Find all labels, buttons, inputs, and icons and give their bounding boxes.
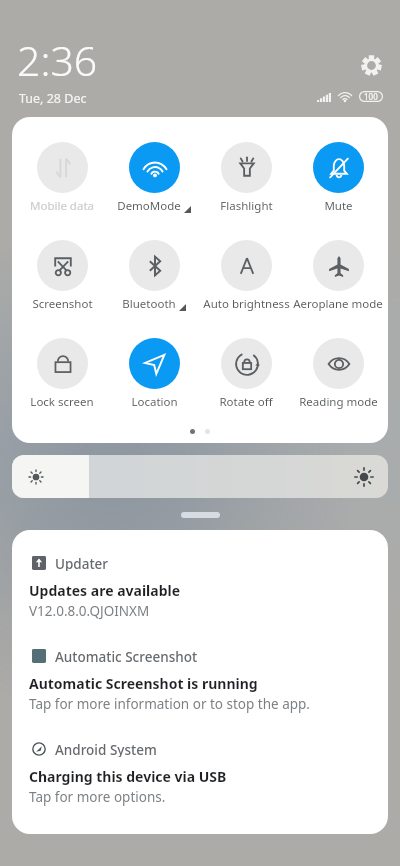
staticText: 100	[364, 91, 378, 102]
staticText: Aeroplane mode	[293, 296, 383, 312]
staticText: Lock screen	[30, 394, 94, 410]
staticText: Mobile data	[30, 198, 94, 214]
staticText: Automatic Screenshot	[55, 648, 198, 664]
staticText: 2:36	[17, 32, 98, 88]
staticText: Screenshot	[32, 296, 93, 312]
staticText: Flashlight	[220, 198, 273, 214]
staticText: DemoMode	[117, 198, 181, 214]
button[interactable]: Rotate off	[200, 338, 292, 410]
button[interactable]: Mobile data	[16, 142, 108, 214]
staticText: Rotate off	[219, 394, 273, 410]
staticText: Auto brightness	[203, 296, 290, 312]
staticText: Location	[131, 394, 178, 410]
staticText: V12.0.8.0.QJOINXM	[29, 602, 150, 620]
staticText: Updates are available	[29, 581, 181, 600]
button[interactable]: Screenshot	[16, 240, 108, 312]
button[interactable]: Automatic Screenshot	[29, 648, 372, 713]
button[interactable]: Aeroplane mode	[292, 240, 384, 312]
staticText: Charging this device via USB	[29, 767, 227, 786]
button[interactable]: Auto brightness	[200, 240, 292, 312]
button[interactable]: Android System	[29, 741, 372, 806]
staticText: Mute	[324, 198, 353, 214]
button[interactable]: Lock screen	[16, 338, 108, 410]
button[interactable]: Mute	[292, 142, 384, 214]
button[interactable]: Reading mode	[292, 338, 384, 410]
button[interactable]: Location	[108, 338, 200, 410]
staticText: Tap for more options.	[29, 788, 166, 806]
button[interactable]: Brightness	[12, 455, 388, 498]
staticText: Android System	[55, 741, 157, 757]
staticText: Tap for more information or to stop the …	[29, 695, 310, 713]
button[interactable]: DemoMode	[108, 142, 200, 214]
button[interactable]: Flashlight	[200, 142, 292, 214]
staticText: Updater	[55, 555, 109, 571]
button[interactable]: Settings	[360, 55, 383, 76]
staticText: Reading mode	[299, 394, 378, 410]
staticText: Bluetooth	[122, 296, 176, 312]
staticText: Tue, 28 Dec	[19, 90, 87, 107]
staticText: Automatic Screenshot is running	[29, 674, 258, 693]
button[interactable]: Bluetooth	[108, 240, 200, 312]
button[interactable]: Updater	[29, 555, 372, 620]
